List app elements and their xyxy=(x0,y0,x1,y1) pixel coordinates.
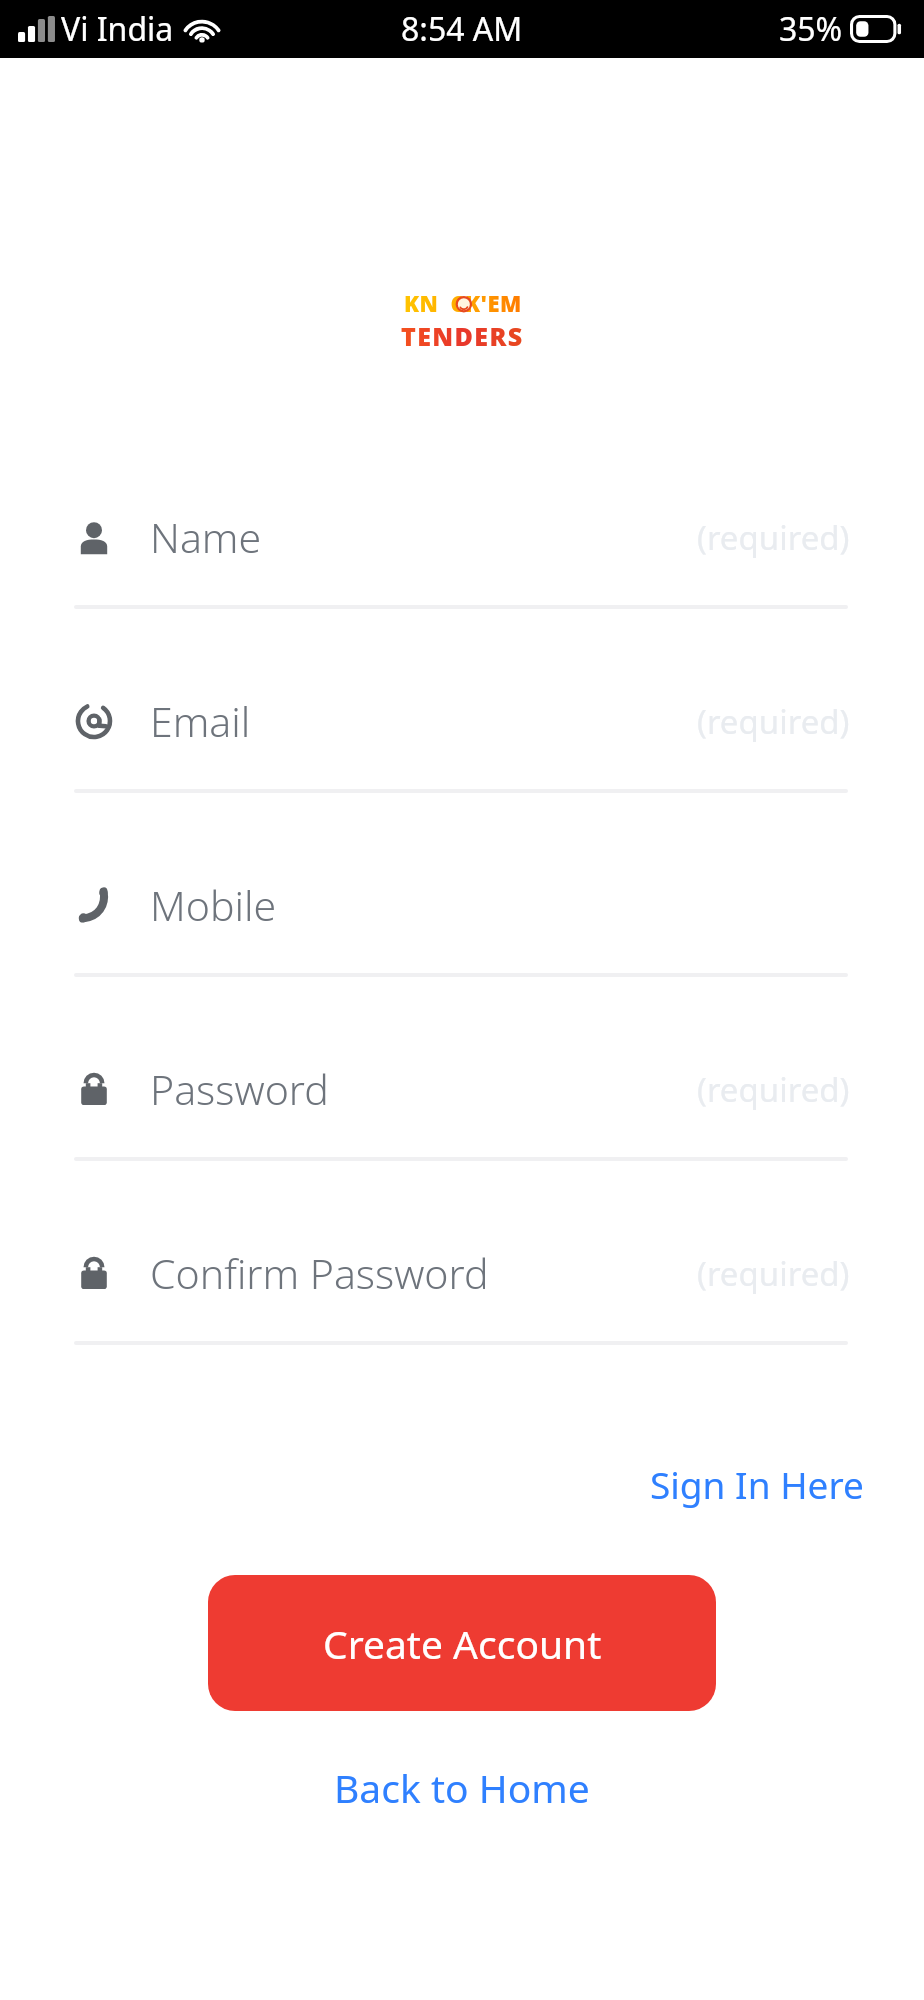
button[interactable]: Sign In Here xyxy=(610,1451,924,1517)
button[interactable]: Mobile xyxy=(0,837,924,1021)
staticText: 8:54 AM xyxy=(401,7,523,51)
staticText: Name xyxy=(150,509,262,565)
staticText: (required) xyxy=(697,515,850,560)
staticText: Email xyxy=(150,693,251,749)
staticText: Confirm Password xyxy=(150,1245,489,1301)
staticText: (required) xyxy=(697,699,850,744)
staticText: Vi India xyxy=(61,7,174,51)
other: Name xyxy=(74,517,114,557)
button[interactable]: Create Account xyxy=(208,1575,716,1711)
other: Password xyxy=(74,1253,114,1293)
staticText: Create Account xyxy=(323,1617,602,1670)
other: Email xyxy=(74,701,114,741)
staticText: TENDERS xyxy=(401,319,524,353)
staticText: Back to Home xyxy=(334,1761,590,1814)
staticText: Password xyxy=(150,1061,329,1117)
button[interactable]: Back to Home xyxy=(294,1751,630,1824)
button[interactable]: Email xyxy=(0,653,924,837)
other: Mobile xyxy=(74,885,114,925)
staticText: 35% xyxy=(779,7,843,51)
staticText: Mobile xyxy=(150,877,277,933)
staticText: (required) xyxy=(697,1251,850,1296)
staticText: KN CK'EM xyxy=(404,288,522,318)
button[interactable]: Name xyxy=(0,469,924,653)
button[interactable]: Password xyxy=(0,1205,924,1389)
button[interactable]: Password xyxy=(0,1021,924,1205)
staticText: (required) xyxy=(697,1067,850,1112)
other: Password xyxy=(74,1069,114,1109)
staticText: Sign In Here xyxy=(650,1459,864,1509)
